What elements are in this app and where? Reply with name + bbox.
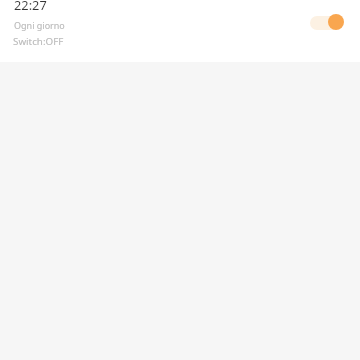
staticText: 22:27 xyxy=(14,0,47,13)
button[interactable]: 22:27 xyxy=(0,0,360,62)
button[interactable]: Toggle alarm, on xyxy=(304,9,350,35)
staticText: Ogni giorno xyxy=(14,19,65,31)
staticText: Switch:OFF xyxy=(13,35,64,48)
